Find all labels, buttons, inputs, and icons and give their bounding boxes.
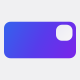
button[interactable]: Phone case, blue to purple gradient — [4, 22, 76, 58]
